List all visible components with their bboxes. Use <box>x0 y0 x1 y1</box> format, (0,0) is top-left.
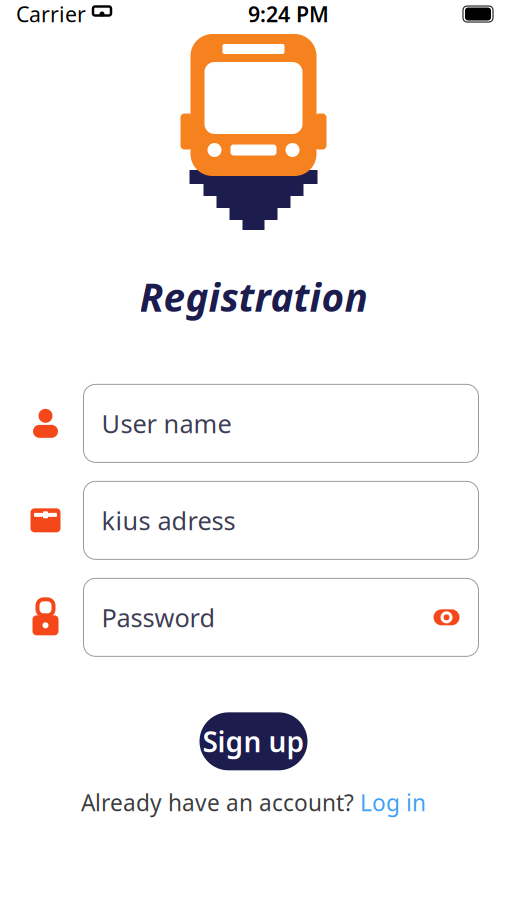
staticText: kius adress <box>101 503 235 537</box>
staticText: User name <box>101 406 231 440</box>
staticText: Carrier <box>16 0 86 28</box>
staticText: Already have an account? <box>81 787 354 817</box>
button[interactable]: Password <box>83 578 478 656</box>
button[interactable]: Already have an account? <box>81 787 426 817</box>
button[interactable]: kius adress <box>83 481 478 559</box>
staticText: Sign up <box>202 723 304 760</box>
button[interactable]: User name <box>83 384 478 462</box>
button[interactable]: Sign up <box>199 712 307 770</box>
staticText: Password <box>101 600 215 634</box>
staticText: Log in <box>360 787 426 817</box>
staticText: 9:24 PM <box>248 0 329 28</box>
staticText: Registration <box>139 271 367 322</box>
